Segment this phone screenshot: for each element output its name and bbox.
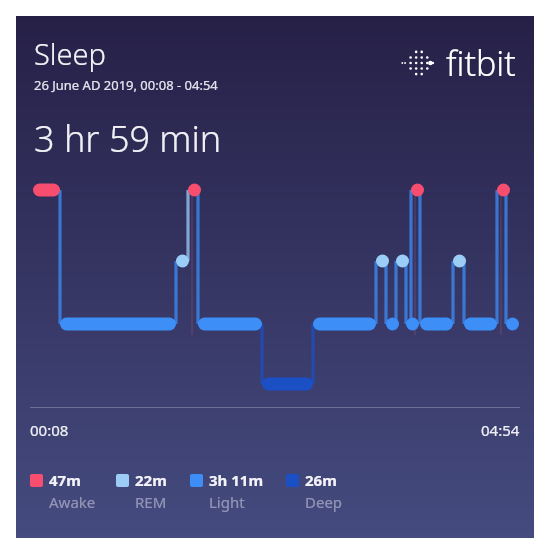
staticText: 26m bbox=[305, 470, 337, 490]
staticText: 3 hr 59 min bbox=[34, 114, 222, 163]
staticText: fitbit bbox=[446, 40, 516, 86]
button[interactable]: Fitbit bbox=[402, 40, 516, 86]
staticText: 3h 11m bbox=[209, 470, 264, 490]
staticText: Awake bbox=[49, 492, 96, 512]
button[interactable]: 3h 11m bbox=[190, 470, 286, 512]
button[interactable]: 26m bbox=[286, 470, 366, 512]
staticText: 04:54 bbox=[481, 420, 520, 440]
staticText: Deep bbox=[305, 492, 343, 512]
staticText: 22m bbox=[135, 470, 167, 490]
button[interactable]: 22m bbox=[116, 470, 190, 512]
staticText: 00:08 bbox=[30, 420, 69, 440]
staticText: REM bbox=[135, 492, 167, 512]
staticText: 26 June AD 2019, 00:08 - 04:54 bbox=[34, 76, 218, 94]
staticText: Sleep bbox=[34, 34, 106, 73]
button[interactable]: 47m bbox=[30, 470, 116, 512]
staticText: 47m bbox=[49, 470, 81, 490]
staticText: Light bbox=[209, 492, 245, 512]
